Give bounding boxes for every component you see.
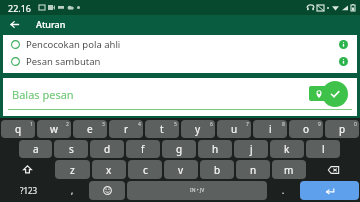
button[interactable]: j [234, 140, 268, 158]
button[interactable]: y [181, 120, 215, 138]
button[interactable]: f [126, 140, 160, 158]
button[interactable]: Info [338, 39, 349, 50]
button[interactable]: r [109, 120, 143, 138]
button[interactable]: u [217, 120, 251, 138]
button[interactable]: h [198, 140, 232, 158]
button[interactable]: b [200, 160, 234, 179]
staticText: z [70, 163, 75, 177]
staticText: . [282, 185, 285, 196]
button[interactable]: x [92, 160, 126, 179]
staticText: m [284, 163, 294, 177]
button[interactable]: Back [5, 15, 23, 33]
staticText: x [106, 163, 112, 177]
staticText: Balas pesan [12, 87, 74, 102]
staticText: j [250, 142, 253, 156]
staticText: f [141, 142, 145, 156]
staticText: 0 [354, 121, 357, 128]
button[interactable]: e [73, 120, 107, 138]
button[interactable]: Save [322, 81, 348, 107]
button[interactable]: t [145, 120, 179, 138]
staticText: o [303, 122, 310, 136]
staticText: w [50, 122, 58, 136]
staticText: 9 [318, 121, 321, 128]
staticText: ?123 [20, 185, 38, 196]
staticText: e [87, 122, 93, 136]
button[interactable]: Pencocokan pola ahli [11, 36, 349, 53]
staticText: c [143, 163, 148, 177]
staticText: Pesan sambutan [26, 55, 338, 68]
button[interactable]: k [270, 140, 304, 158]
button[interactable]: Shift [1, 160, 53, 179]
staticText: 7 [246, 121, 249, 128]
staticText: v [178, 163, 184, 177]
button[interactable]: Period [269, 181, 298, 200]
button[interactable]: s [54, 140, 88, 158]
staticText: 8 [282, 121, 285, 128]
button[interactable]: Emoji [89, 181, 125, 200]
staticText: q [15, 122, 22, 136]
button[interactable]: Comma [58, 181, 87, 200]
staticText: r [124, 122, 129, 136]
button[interactable]: Backspace [308, 160, 359, 179]
button[interactable]: g [162, 140, 196, 158]
staticText: 3 [102, 121, 105, 128]
button[interactable]: n [236, 160, 270, 179]
staticText: k [284, 142, 290, 156]
button[interactable]: i [253, 120, 287, 138]
button[interactable]: Space [127, 181, 267, 200]
staticText: IN • JV [190, 187, 205, 194]
staticText: 1 [30, 121, 33, 128]
button[interactable]: Enter [300, 181, 359, 200]
button[interactable]: q [1, 120, 35, 138]
staticText: u [231, 122, 238, 136]
button[interactable]: d [90, 140, 124, 158]
staticText: a [33, 142, 39, 156]
button[interactable]: a [19, 140, 52, 158]
button[interactable]: o [289, 120, 323, 138]
button[interactable]: Balas pesan [3, 78, 357, 116]
staticText: 5 [174, 121, 177, 128]
button[interactable]: Symbols [1, 181, 56, 200]
staticText: 4 [138, 121, 141, 128]
button[interactable]: m [272, 160, 306, 179]
staticText: 2 [66, 121, 69, 128]
staticText: g [176, 142, 183, 156]
button[interactable]: p [325, 120, 359, 138]
staticText: s [69, 142, 74, 156]
button[interactable]: v [164, 160, 198, 179]
button[interactable]: Info [338, 56, 349, 67]
staticText: p [339, 122, 346, 136]
staticText: b [214, 163, 221, 177]
staticText: , [71, 185, 74, 196]
staticText: 6 [210, 121, 213, 128]
button[interactable]: w [37, 120, 71, 138]
staticText: 22.16 [8, 2, 32, 14]
staticText: t [160, 122, 164, 136]
staticText: Aturan [36, 18, 66, 30]
staticText: d [104, 142, 111, 156]
staticText: l [322, 142, 325, 156]
button[interactable]: Pesan sambutan [11, 53, 349, 70]
staticText: y [195, 122, 201, 136]
staticText: Pencocokan pola ahli [26, 38, 338, 51]
staticText: i [269, 122, 272, 136]
button[interactable]: c [128, 160, 162, 179]
button[interactable]: Location [309, 86, 329, 101]
button[interactable]: z [55, 160, 90, 179]
staticText: h [212, 142, 219, 156]
staticText: n [250, 163, 257, 177]
button[interactable]: l [306, 140, 340, 158]
